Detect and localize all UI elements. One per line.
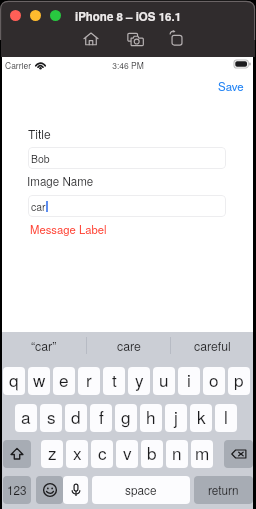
button[interactable]: space bbox=[92, 476, 190, 504]
button[interactable]: d bbox=[65, 404, 87, 432]
button[interactable]: r bbox=[78, 367, 100, 395]
staticText: k bbox=[197, 404, 206, 429]
button[interactable]: 123 bbox=[3, 476, 31, 504]
button[interactable]: t bbox=[103, 367, 125, 395]
staticText: h bbox=[146, 404, 156, 429]
staticText: careful bbox=[194, 337, 231, 355]
staticText: u bbox=[159, 367, 169, 392]
staticText: iPhone 8 – iOS 16.1 bbox=[0, 8, 256, 24]
button[interactable]: z bbox=[41, 440, 63, 468]
staticText: “car” bbox=[31, 337, 57, 355]
staticText: Save bbox=[218, 78, 244, 94]
staticText: e bbox=[59, 367, 69, 392]
button[interactable]: Dictate bbox=[63, 476, 88, 504]
staticText: z bbox=[48, 440, 57, 465]
staticText: car bbox=[31, 199, 46, 214]
staticText: w bbox=[33, 367, 46, 392]
staticText: f bbox=[99, 404, 104, 429]
button[interactable]: l bbox=[215, 404, 237, 432]
button[interactable]: Home bbox=[83, 31, 99, 47]
button[interactable]: q bbox=[3, 367, 25, 395]
staticText: g bbox=[121, 404, 131, 429]
staticText: m bbox=[195, 440, 210, 465]
staticText: b bbox=[147, 440, 157, 465]
staticText: x bbox=[73, 440, 82, 465]
staticText: 123 bbox=[7, 481, 27, 498]
button[interactable]: v bbox=[116, 440, 138, 468]
staticText: Carrier bbox=[5, 59, 31, 71]
button[interactable]: y bbox=[128, 367, 150, 395]
staticText: v bbox=[123, 440, 132, 465]
button[interactable]: w bbox=[28, 367, 50, 395]
button[interactable]: Backspace bbox=[224, 440, 253, 468]
staticText: i bbox=[187, 367, 191, 392]
staticText: n bbox=[172, 440, 182, 465]
button[interactable]: Rotate bbox=[169, 30, 185, 46]
button[interactable]: car bbox=[28, 195, 226, 217]
button[interactable]: e bbox=[53, 367, 75, 395]
staticText: return bbox=[208, 481, 239, 498]
button[interactable]: Bob bbox=[28, 147, 226, 169]
staticText: l bbox=[224, 404, 228, 429]
button[interactable]: b bbox=[141, 440, 163, 468]
staticText: y bbox=[135, 367, 144, 392]
button[interactable]: g bbox=[115, 404, 137, 432]
staticText: a bbox=[21, 404, 31, 429]
button[interactable]: f bbox=[90, 404, 112, 432]
staticText: j bbox=[174, 404, 178, 429]
button[interactable]: m bbox=[191, 440, 213, 468]
button[interactable]: x bbox=[66, 440, 88, 468]
button[interactable]: s bbox=[40, 404, 62, 432]
staticText: care bbox=[117, 337, 141, 355]
button[interactable]: j bbox=[165, 404, 187, 432]
staticText: 3:46 PM bbox=[2, 59, 254, 71]
button[interactable]: “car” bbox=[2, 332, 86, 358]
button[interactable]: Emoji bbox=[36, 476, 63, 504]
staticText: Bob bbox=[31, 151, 50, 166]
button[interactable]: a bbox=[15, 404, 37, 432]
staticText: space bbox=[125, 481, 157, 498]
button[interactable]: careful bbox=[171, 332, 254, 358]
staticText: p bbox=[234, 367, 244, 392]
button[interactable]: p bbox=[228, 367, 250, 395]
staticText: o bbox=[209, 367, 219, 392]
staticText: d bbox=[71, 404, 81, 429]
button[interactable]: h bbox=[140, 404, 162, 432]
button[interactable]: o bbox=[203, 367, 225, 395]
button[interactable]: Screenshot bbox=[127, 31, 144, 48]
staticText: Title bbox=[28, 125, 51, 142]
staticText: r bbox=[86, 367, 92, 392]
button[interactable]: c bbox=[91, 440, 113, 468]
button[interactable]: k bbox=[190, 404, 212, 432]
staticText: q bbox=[9, 367, 19, 392]
staticText: Message Label bbox=[30, 221, 107, 237]
button[interactable]: Save bbox=[218, 78, 244, 94]
staticText: s bbox=[47, 404, 56, 429]
staticText: c bbox=[98, 440, 107, 465]
button[interactable]: Minimize window bbox=[30, 10, 41, 21]
button[interactable]: care bbox=[87, 332, 170, 358]
button[interactable]: Shift bbox=[3, 440, 31, 468]
button[interactable]: return bbox=[194, 476, 253, 504]
staticText: Image Name bbox=[27, 173, 94, 190]
button[interactable]: Zoom window bbox=[50, 10, 61, 21]
button[interactable]: u bbox=[153, 367, 175, 395]
button[interactable]: Close window bbox=[10, 10, 21, 21]
staticText: t bbox=[112, 367, 117, 392]
button[interactable]: n bbox=[166, 440, 188, 468]
button[interactable]: i bbox=[178, 367, 200, 395]
